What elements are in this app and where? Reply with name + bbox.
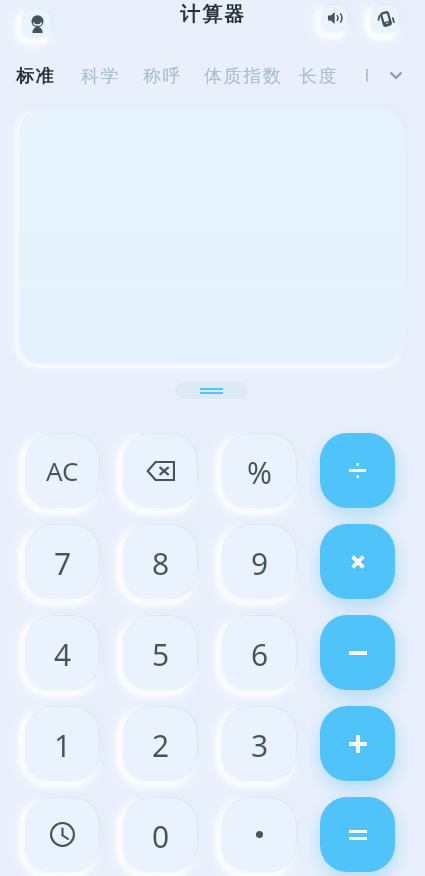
button[interactable]: 标准 — [8, 60, 64, 92]
button[interactable]: Vibrate — [371, 4, 400, 33]
button[interactable]: AC — [25, 433, 100, 508]
button[interactable]: 9 — [222, 524, 297, 599]
button[interactable]: History — [25, 797, 100, 872]
staticText: 长度 — [299, 65, 339, 88]
staticText: 称呼 — [143, 65, 183, 88]
button[interactable]: Add — [320, 706, 395, 781]
button[interactable]: 体质指数 — [196, 60, 291, 92]
button[interactable]: 1 — [25, 706, 100, 781]
button[interactable]: % — [222, 433, 297, 508]
button[interactable]: Divide — [320, 433, 395, 508]
button[interactable]: 称呼 — [135, 60, 191, 92]
button[interactable]: 3 — [222, 706, 297, 781]
staticText: 1 — [54, 725, 72, 766]
staticText: 6 — [251, 634, 269, 675]
staticText: 9 — [251, 543, 269, 584]
button[interactable]: 7 — [25, 524, 100, 599]
staticText: 科学 — [81, 65, 121, 88]
staticText: 时间 — [365, 65, 405, 88]
staticText: 标准 — [16, 65, 56, 88]
staticText: 5 — [152, 634, 170, 675]
staticText: 0 — [152, 816, 170, 857]
staticText: 体质指数 — [204, 65, 283, 88]
staticText: 3 — [251, 725, 269, 766]
staticText: 计算器 — [179, 2, 245, 27]
button[interactable]: Multiply — [320, 524, 395, 599]
button[interactable]: More tabs — [382, 61, 410, 89]
button[interactable]: Delete — [123, 433, 198, 508]
staticText: 7 — [54, 543, 72, 584]
staticText: 2 — [152, 725, 170, 766]
button[interactable]: 2 — [123, 706, 198, 781]
button[interactable]: Expand history — [175, 382, 248, 399]
staticText: AC — [46, 453, 79, 488]
staticText: % — [247, 452, 272, 493]
button[interactable]: 5 — [123, 615, 198, 690]
button[interactable]: Subtract — [320, 615, 395, 690]
staticText: 4 — [54, 634, 72, 675]
button[interactable]: Account — [22, 8, 52, 38]
button[interactable]: 0 — [123, 797, 198, 872]
button[interactable]: 6 — [222, 615, 297, 690]
staticText: 8 — [152, 543, 170, 584]
button[interactable]: Decimal point — [222, 797, 297, 872]
button[interactable]: 长度 — [291, 60, 347, 92]
button[interactable]: 时间 — [357, 60, 413, 92]
button[interactable]: Sound — [321, 4, 349, 32]
button[interactable]: Equals — [320, 797, 395, 872]
button[interactable]: 4 — [25, 615, 100, 690]
button[interactable]: 8 — [123, 524, 198, 599]
button[interactable]: 科学 — [73, 60, 129, 92]
